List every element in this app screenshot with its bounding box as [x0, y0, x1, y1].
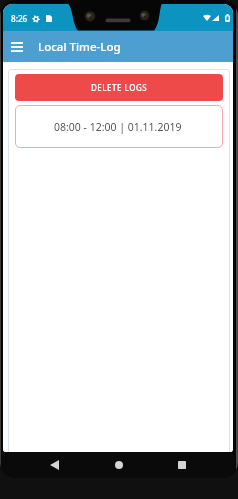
button[interactable]: Home	[110, 456, 128, 474]
button[interactable]: DELETE LOGS	[15, 74, 223, 101]
staticText: Local Time-Log	[38, 39, 121, 55]
staticText: 8:26	[11, 13, 28, 24]
button[interactable]: Recent apps	[173, 456, 191, 474]
staticText: 08:00 - 12:00 | 01.11.2019	[54, 120, 182, 134]
button[interactable]: Open navigation menu	[5, 35, 29, 59]
button[interactable]: Back	[45, 456, 63, 474]
staticText: DELETE LOGS	[91, 82, 148, 93]
button[interactable]: 08:00 - 12:00 | 01.11.2019	[15, 105, 223, 148]
